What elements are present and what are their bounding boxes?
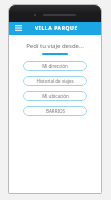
staticText: BARRIOS xyxy=(46,108,65,114)
button[interactable]: Mi dirección xyxy=(23,61,87,71)
staticText: Mi dirección xyxy=(42,63,68,69)
staticText: Pedí tu viaje desde... xyxy=(26,42,84,50)
staticText: VILLA PARQUE xyxy=(35,25,78,32)
button[interactable]: BARRIOS xyxy=(23,106,87,116)
staticText: Mi ubicación xyxy=(42,93,69,99)
button[interactable]: Historial de viajes xyxy=(23,76,87,86)
staticText: Historial de viajes xyxy=(36,78,74,84)
button[interactable]: Mi ubicación xyxy=(23,91,87,101)
button[interactable]: Open navigation menu xyxy=(13,23,24,34)
